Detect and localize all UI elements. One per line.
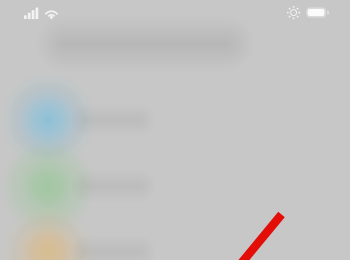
button[interactable]: General bbox=[0, 0, 334, 147]
button[interactable]: Accessibility bbox=[0, 0, 334, 147]
button[interactable]: Notifications bbox=[0, 0, 334, 147]
